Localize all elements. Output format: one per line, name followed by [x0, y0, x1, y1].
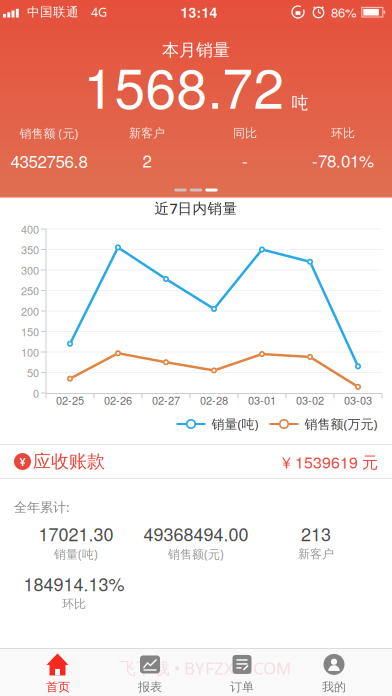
staticText: 销售额(万元)	[304, 415, 377, 433]
staticText: 吨	[291, 92, 308, 114]
staticText: 全年累计:	[14, 498, 69, 516]
staticText: 1568.72	[83, 46, 284, 124]
staticText: 150	[21, 324, 39, 339]
staticText: 250	[21, 283, 39, 298]
staticText: 新客户	[129, 126, 165, 141]
staticText: 350	[21, 242, 39, 257]
staticText: 03-01	[248, 392, 276, 408]
staticText: 03-02	[296, 392, 324, 408]
staticText: 销量(吨)	[211, 415, 258, 433]
button[interactable]: 报表	[104, 649, 196, 696]
staticText: 同比	[233, 126, 257, 141]
staticText: 200	[21, 303, 39, 319]
staticText: 13:14	[180, 2, 217, 22]
staticText: 17021.30	[38, 521, 113, 546]
staticText: ¥ 1539619 元	[282, 450, 378, 473]
staticText: 销售额(元)	[168, 546, 224, 562]
staticText: 中国联通	[27, 4, 79, 20]
staticText: 50	[27, 365, 39, 380]
staticText: 4352756.8	[10, 148, 87, 173]
staticText: 飞下载 • BYFZXW.COM	[119, 656, 291, 680]
staticText: ¥	[19, 454, 25, 469]
staticText: -	[242, 148, 248, 172]
staticText: 03-03	[344, 392, 372, 408]
staticText: 2	[142, 148, 151, 172]
staticText: 首页	[46, 679, 70, 694]
staticText: 近7日内销量	[154, 198, 237, 218]
staticText: 本月销量	[162, 39, 230, 61]
staticText: 应收账款	[33, 450, 105, 473]
button[interactable]: 我的	[288, 649, 380, 696]
staticText: 02-28	[200, 392, 228, 408]
staticText: -78.01%	[312, 148, 374, 172]
staticText: 销量(吨)	[54, 546, 98, 562]
staticText: 报表	[138, 679, 162, 694]
staticText: 400	[21, 221, 39, 237]
staticText: 订单	[230, 679, 254, 694]
button[interactable]: 首页	[12, 649, 104, 696]
staticText: 02-25	[56, 392, 84, 408]
staticText: 49368494.00	[143, 521, 248, 546]
staticText: 02-26	[104, 392, 132, 408]
staticText: 213	[301, 521, 331, 546]
staticText: 184914.13%	[23, 571, 124, 596]
staticText: 4G	[91, 3, 107, 20]
staticText: 环比	[331, 126, 355, 141]
staticText: 02-27	[152, 392, 180, 408]
staticText: 销售额 (元)	[19, 125, 78, 141]
staticText: 100	[21, 344, 39, 360]
button[interactable]: ¥	[0, 445, 392, 478]
button[interactable]: 订单	[196, 649, 288, 696]
staticText: 环比	[62, 596, 86, 611]
staticText: 新客户	[298, 546, 334, 561]
staticText: 300	[21, 262, 39, 278]
staticText: 0	[33, 385, 39, 401]
staticText: 我的	[322, 679, 346, 694]
staticText: 86%	[331, 3, 357, 21]
